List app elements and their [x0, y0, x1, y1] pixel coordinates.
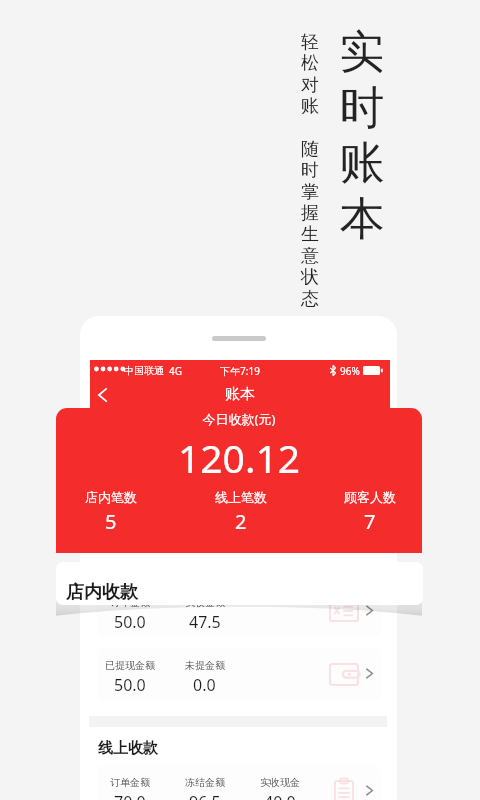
staticText: 冻结金额 [185, 776, 225, 789]
staticText: 随 [299, 138, 321, 161]
staticText: 5 [105, 508, 117, 535]
staticText: 意 [299, 245, 321, 268]
staticText: 未提金额 [185, 659, 225, 672]
staticText: 账 [337, 135, 387, 192]
button[interactable]: 店内笔数 [85, 489, 137, 535]
staticText: 7 [364, 508, 376, 535]
staticText: 实收金额 [185, 596, 225, 609]
staticText: 40.0 [264, 791, 296, 800]
staticText: 账 [299, 95, 321, 118]
staticText: 时 [299, 159, 321, 182]
button[interactable]: 已提现金额 [97, 648, 381, 700]
staticText: 掌 [299, 181, 321, 204]
staticText: 中国联通 [124, 364, 164, 377]
staticText: 70.0 [114, 791, 146, 800]
staticText: 下午7:19 [90, 364, 390, 378]
staticText: 实收现金 [260, 776, 300, 789]
staticText: 线上笔数 [215, 489, 267, 505]
staticText: 订单金额 [110, 596, 150, 609]
staticText: 50.0 [114, 674, 146, 696]
staticText: 顾客人数 [344, 489, 396, 505]
staticText: 4G [169, 364, 182, 378]
staticText: 状 [299, 266, 321, 289]
staticText: 50.0 [114, 611, 146, 633]
staticText: 今日收款(元) [56, 410, 422, 428]
staticText: 实 [337, 24, 387, 81]
button[interactable]: 线上笔数 [215, 489, 267, 535]
staticText: 0.0 [193, 674, 216, 696]
staticText: 订单金额 [110, 776, 150, 789]
staticText: 已提现金额 [105, 659, 155, 672]
staticText: 账本 [225, 385, 255, 404]
button[interactable]: Back [86, 381, 118, 408]
staticText: 96.5 [189, 791, 221, 800]
staticText: 店内笔数 [85, 489, 137, 505]
staticText: 生 [299, 223, 321, 246]
staticText: 120.12 [56, 431, 422, 484]
button[interactable]: 顾客人数 [344, 489, 396, 535]
staticText: 对 [299, 74, 321, 97]
staticText: 本 [337, 191, 387, 248]
staticText: 96% [340, 364, 360, 378]
staticText: 线上收款 [98, 739, 158, 758]
staticText: 时 [337, 80, 387, 137]
button[interactable]: 订单金额 [97, 765, 381, 800]
button[interactable]: 订单金额 [97, 585, 381, 637]
staticText: 2 [235, 508, 247, 535]
staticText: 店内收款 [66, 581, 138, 604]
staticText: 松 [299, 52, 321, 75]
staticText: 47.5 [189, 611, 221, 633]
staticText: 握 [299, 202, 321, 225]
staticText: 轻 [299, 31, 321, 54]
staticText: 态 [299, 288, 321, 311]
